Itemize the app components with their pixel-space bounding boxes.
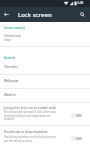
button[interactable]: Weather <box>0 88 90 102</box>
button[interactable]: Screen lock <box>0 22 90 46</box>
staticText: Double-tap to sleep anywhere <box>4 130 48 134</box>
staticText: Double tap anywhere on the lock screen t… <box>4 135 57 142</box>
staticText: 3:48 <box>77 1 84 5</box>
button[interactable]: Long press lock icon to enable torch <box>0 102 90 126</box>
staticText: This option will not work if lock screen… <box>4 110 57 120</box>
staticText: Shortcuts <box>4 65 18 69</box>
staticText: Screen security <box>4 26 25 30</box>
button[interactable]: Wallpaper <box>0 74 90 88</box>
button[interactable]: Shortcuts <box>0 58 90 75</box>
staticText: Wallpaper <box>4 79 19 83</box>
button[interactable]: Back <box>1 9 12 20</box>
staticText: General <box>4 56 15 60</box>
staticText: Screen lock <box>4 34 21 38</box>
staticText: Weather <box>4 93 17 97</box>
staticText: Swipe <box>4 38 12 42</box>
button[interactable]: Toggle <box>71 135 82 142</box>
staticText: Lock screen <box>18 11 52 19</box>
button[interactable]: Search <box>77 9 88 20</box>
button[interactable]: Toggle <box>71 112 82 119</box>
button[interactable]: Double-tap to sleep anywhere <box>0 125 90 150</box>
staticText: Long press lock icon to enable torch <box>4 106 57 110</box>
